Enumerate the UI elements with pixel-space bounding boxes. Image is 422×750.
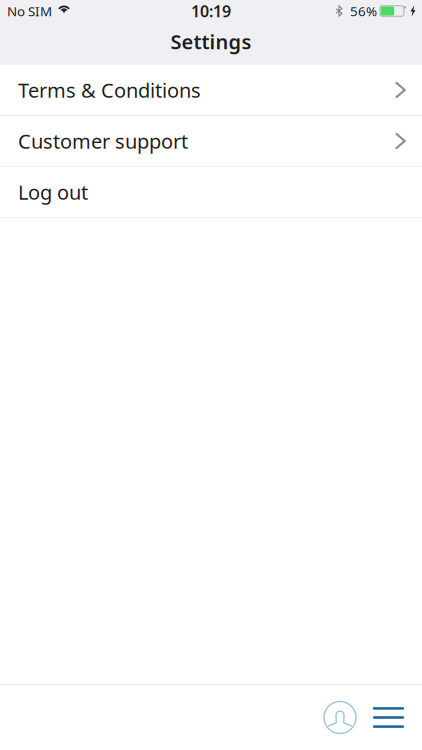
button[interactable]: Customer support (0, 116, 422, 167)
staticText: 10:19 (191, 0, 231, 22)
staticText: No SIM (7, 2, 52, 20)
button[interactable]: Terms & Conditions (0, 65, 422, 116)
staticText: Log out (18, 179, 88, 205)
button[interactable]: Menu (364, 693, 414, 742)
button[interactable]: Profile (314, 691, 364, 743)
staticText: Settings (170, 28, 251, 55)
staticText: Terms & Conditions (18, 77, 201, 103)
staticText: Customer support (18, 128, 188, 154)
staticText: 56% (350, 2, 377, 20)
button[interactable]: Log out (0, 167, 422, 218)
